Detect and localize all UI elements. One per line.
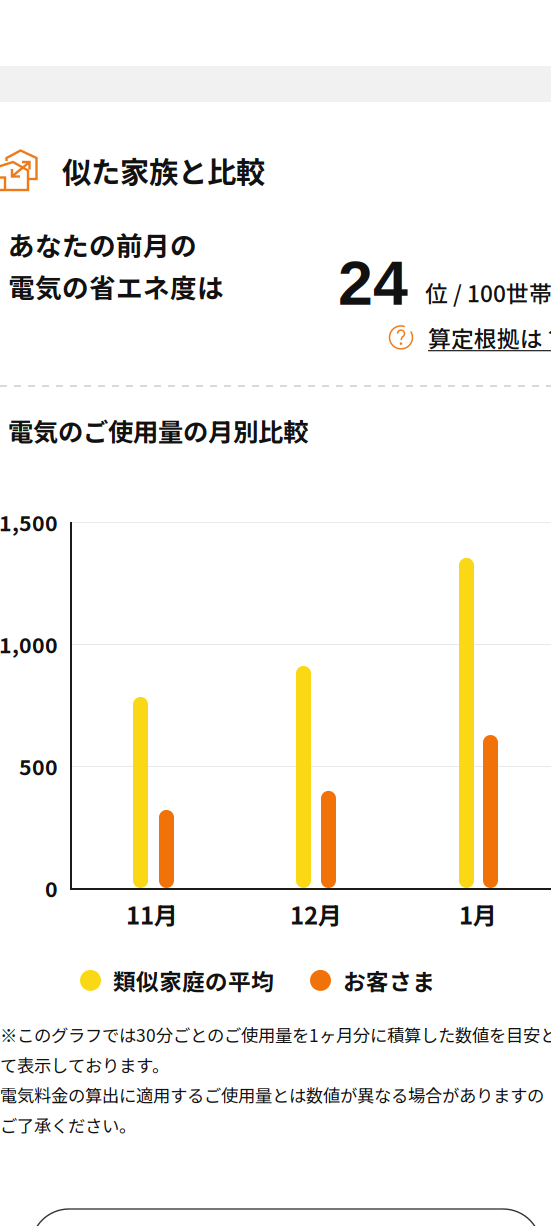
button[interactable]: 詳細を見る [31,1209,541,1226]
staticText: お客さま [343,964,435,997]
staticText: あなたの前月の [8,225,197,264]
staticText: 位 / 100世帯 [425,276,551,309]
staticText: 24 [338,248,408,318]
staticText: て表示しております。 [0,1052,169,1077]
staticText: 1,000 [0,629,58,659]
staticText: 類似家庭の平均 [113,964,274,997]
staticText: 0 [45,873,58,903]
staticText: 12月 [290,897,342,931]
staticText: 1月 [459,897,497,931]
button[interactable]: 算定根拠は？ [388,321,551,354]
staticText: 電気の省エネ度は [8,267,224,306]
staticText: 500 [19,751,58,781]
staticText: 1,500 [0,507,58,537]
staticText: 似た家族と比較 [62,149,265,191]
staticText: ご了承ください。 [0,1112,136,1137]
staticText: 電気のご使用量の月別比較 [8,412,308,449]
staticText: ※このグラフでは30分ごとのご使用量を1ヶ月分に積算した数値を目安と [0,1022,551,1047]
staticText: 11月 [126,897,178,931]
staticText: 電気料金の算出に適用するご使用量とは数値が異なる場合がありますの [0,1082,544,1107]
staticText: 算定根拠は？ [428,321,551,354]
